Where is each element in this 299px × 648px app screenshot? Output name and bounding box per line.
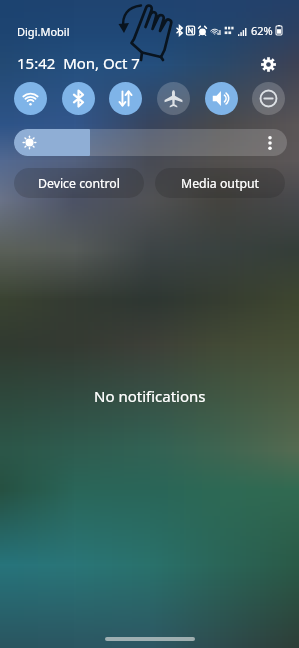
staticText: No notifications	[94, 386, 206, 406]
staticText: Media output	[181, 175, 259, 192]
staticText: Device control	[38, 175, 120, 192]
button[interactable]: Device control	[14, 168, 144, 198]
button[interactable]: Settings	[259, 55, 277, 73]
staticText: 15:42 Mon, Oct 7	[17, 53, 140, 73]
button[interactable]: Brightness	[14, 129, 287, 156]
staticText: 62%	[251, 23, 273, 38]
button[interactable]: Wi-Fi	[14, 82, 47, 115]
button[interactable]: Media output	[155, 168, 285, 198]
staticText: Digi.Mobil	[17, 24, 70, 39]
button[interactable]: Airplane mode	[157, 82, 190, 115]
button[interactable]: More brightness settings	[262, 135, 278, 151]
button[interactable]: Bluetooth	[62, 82, 95, 115]
button[interactable]: Mobile data	[109, 82, 142, 115]
button[interactable]: Do not disturb	[252, 82, 285, 115]
button[interactable]: Sound	[205, 82, 238, 115]
